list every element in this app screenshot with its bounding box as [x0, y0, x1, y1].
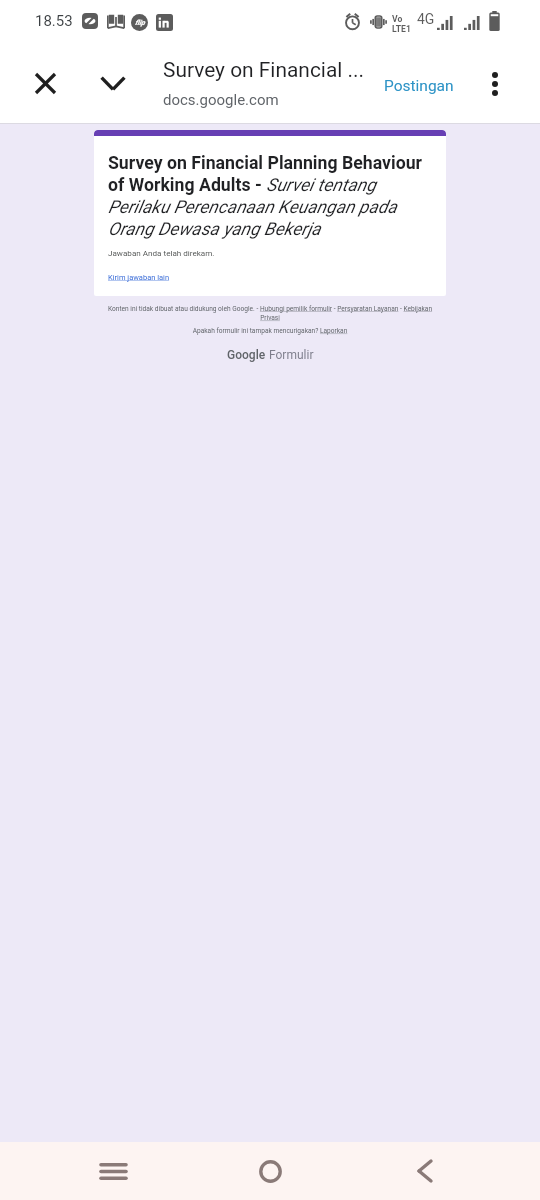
staticText: 4G: [417, 11, 435, 27]
button[interactable]: Close: [22, 60, 69, 107]
button[interactable]: More options: [471, 60, 518, 107]
staticText: Konten ini tidak dibuat atau didukung ol…: [105, 305, 435, 322]
button[interactable]: Kirim jawaban lain: [108, 273, 170, 282]
staticText: Postingan: [384, 77, 454, 95]
staticText: Survey on Financial Planning Behaviour o…: [108, 153, 432, 240]
staticText: Kirim jawaban lain: [108, 273, 170, 282]
button[interactable]: Collapse: [89, 60, 136, 107]
button[interactable]: Home: [245, 1146, 295, 1196]
staticText: flip: [135, 19, 145, 27]
staticText: LTE1: [392, 24, 411, 34]
staticText: Google: [227, 348, 266, 362]
staticText: docs.google.com: [163, 91, 279, 109]
button[interactable]: Recent apps: [88, 1146, 138, 1196]
staticText: Survey on Financial ...: [163, 58, 365, 82]
staticText: Jawaban Anda telah direkam.: [108, 248, 215, 257]
button[interactable]: Postingan: [378, 71, 460, 101]
staticText: Vo: [392, 14, 403, 24]
button[interactable]: Back: [400, 1146, 450, 1196]
staticText: Apakah formulir ini tampak mencurigakan?…: [94, 327, 446, 335]
staticText: 18.53: [35, 12, 73, 30]
staticText: Formulir: [269, 348, 314, 362]
